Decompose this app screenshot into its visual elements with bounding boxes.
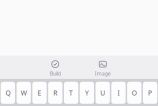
button[interactable]: W — [17, 82, 31, 104]
staticText: U — [100, 88, 105, 97]
button[interactable]: U — [95, 82, 110, 104]
staticText: Y — [85, 88, 89, 97]
staticText: Build — [50, 70, 61, 77]
button[interactable]: R — [48, 82, 62, 104]
button[interactable]: Build — [40, 59, 70, 79]
staticText: R — [53, 88, 57, 97]
button[interactable]: P — [143, 82, 157, 104]
button[interactable]: I — [111, 82, 126, 104]
staticText: Image — [95, 70, 111, 77]
button[interactable]: Q — [1, 82, 15, 104]
staticText: Q — [5, 88, 10, 97]
button[interactable]: Image — [88, 59, 118, 79]
button[interactable]: O — [127, 82, 141, 104]
button[interactable]: T — [64, 82, 78, 104]
staticText: T — [69, 88, 73, 97]
staticText: O — [132, 88, 137, 97]
staticText: W — [21, 88, 27, 97]
staticText: P — [148, 88, 152, 97]
staticText: E — [37, 88, 41, 97]
staticText: I — [117, 88, 119, 97]
button[interactable]: E — [32, 82, 47, 104]
button[interactable]: Y — [80, 82, 94, 104]
